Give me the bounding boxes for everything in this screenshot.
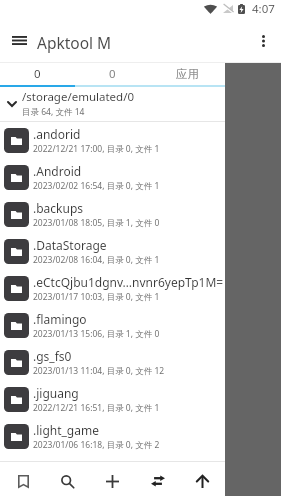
- button[interactable]: More options: [249, 27, 277, 55]
- staticText: 2023/01/13 11:04, 目录 0, 文件 12: [33, 365, 165, 377]
- button[interactable]: .light_game: [0, 418, 281, 455]
- staticText: 2023/02/02 16:54, 目录 0, 文件 1: [33, 180, 160, 192]
- button[interactable]: Transfer: [135, 462, 180, 500]
- button[interactable]: .jiguang: [0, 381, 281, 418]
- button[interactable]: 0: [75, 64, 150, 84]
- staticText: .jiguang: [33, 385, 79, 401]
- staticText: 2023/02/08 16:04, 目录 0, 文件 1: [33, 254, 160, 266]
- button[interactable]: .eCtcQjbu1dgnv…nvnr6yepTp1M=: [0, 270, 281, 307]
- staticText: 2023/01/17 10:03, 目录 0, 文件 1: [33, 291, 160, 303]
- staticText: 2023/01/06 16:18, 目录 0, 文件 2: [33, 439, 160, 451]
- button[interactable]: .andorid: [0, 122, 281, 159]
- staticText: 目录 64, 文件 14: [22, 106, 85, 118]
- staticText: 2023/01/08 18:05, 目录 1, 文件 0: [33, 217, 160, 229]
- button[interactable]: .backups: [0, 196, 281, 233]
- staticText: 2022/12/21 16:51, 目录 0, 文件 1: [33, 402, 160, 414]
- staticText: 0: [109, 66, 116, 82]
- staticText: 应用: [176, 67, 199, 81]
- staticText: .Android: [33, 163, 82, 179]
- staticText: .DataStorage: [33, 237, 107, 253]
- button[interactable]: .Android: [0, 159, 281, 196]
- button[interactable]: .DataStorage: [0, 233, 281, 270]
- button[interactable]: .flamingo: [0, 307, 281, 344]
- staticText: 2022/12/21 17:00, 目录 0, 文件 1: [33, 143, 160, 155]
- button[interactable]: Add: [90, 462, 135, 500]
- button[interactable]: Bookmarks: [0, 462, 45, 500]
- staticText: .gs_fs0: [33, 348, 72, 364]
- button[interactable]: /storage/emulated/0: [0, 87, 281, 121]
- staticText: 0: [34, 66, 41, 82]
- staticText: /storage/emulated/0: [22, 89, 135, 105]
- staticText: .light_game: [33, 422, 99, 438]
- button[interactable]: Open navigation drawer: [5, 26, 33, 54]
- staticText: .flamingo: [33, 311, 87, 327]
- staticText: .andorid: [33, 126, 81, 142]
- button[interactable]: .gs_fs0: [0, 344, 281, 381]
- button[interactable]: 0: [0, 64, 75, 84]
- button[interactable]: Search: [45, 462, 90, 500]
- button[interactable]: Go up: [180, 462, 225, 500]
- staticText: .backups: [33, 200, 84, 216]
- staticText: .eCtcQjbu1dgnv…nvnr6yepTp1M=: [33, 274, 224, 290]
- staticText: Apktool M: [37, 32, 112, 53]
- staticText: 2023/01/13 15:06, 目录 1, 文件 0: [33, 328, 160, 340]
- button[interactable]: 应用: [150, 64, 225, 84]
- staticText: 4:07: [252, 1, 275, 17]
